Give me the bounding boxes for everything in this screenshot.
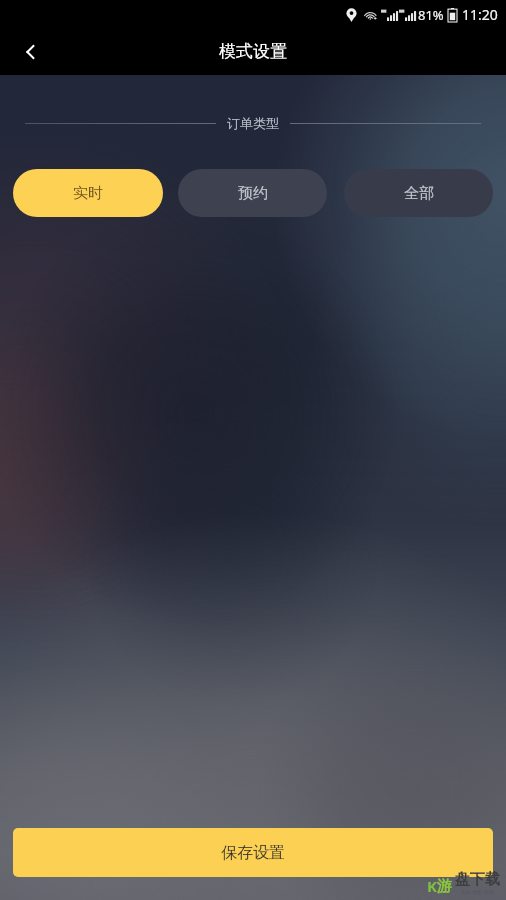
button[interactable]: Back (7, 28, 55, 75)
staticText: 实时 (73, 184, 103, 203)
staticText: 11:20 (462, 5, 498, 24)
button[interactable]: 实时 (13, 169, 163, 217)
staticText: 保存设置 (221, 843, 285, 863)
staticText: 盘下载 (455, 870, 500, 889)
button[interactable]: 预约 (178, 169, 327, 217)
staticText: K (427, 876, 437, 896)
staticText: 全部 (404, 184, 434, 203)
staticText: 81% (418, 6, 444, 24)
staticText: 游 (437, 877, 452, 896)
staticText: 预约 (238, 184, 268, 203)
button[interactable]: 保存设置 (13, 828, 493, 877)
button[interactable]: 全部 (344, 169, 493, 217)
staticText: 订单类型 (227, 115, 279, 131)
staticText: 模式设置 (219, 41, 287, 62)
